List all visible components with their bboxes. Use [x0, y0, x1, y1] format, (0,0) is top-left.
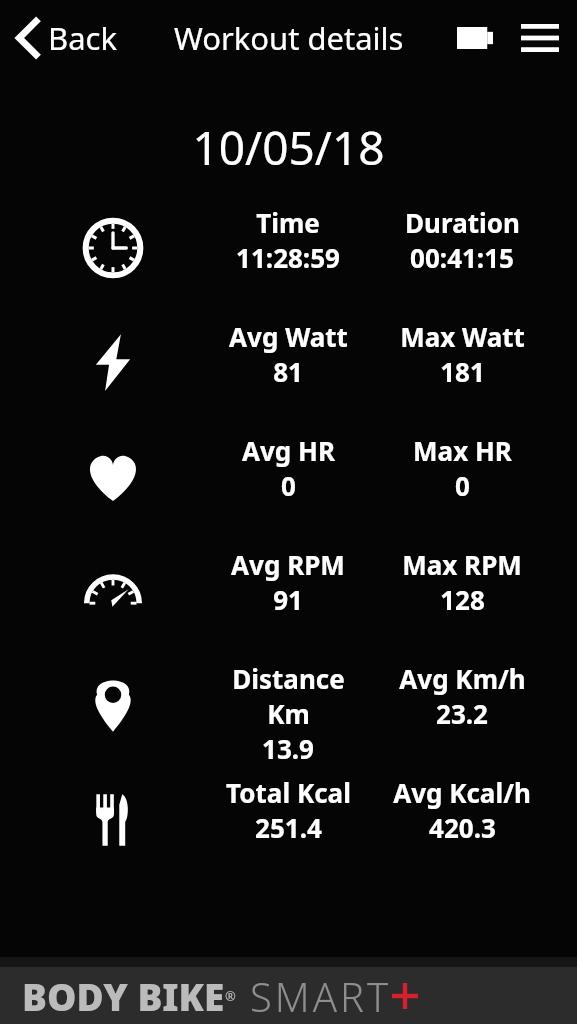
staticText: Avg Km/h — [399, 661, 526, 696]
staticText: BODY BIKE — [22, 971, 225, 1021]
button[interactable]: Battery status — [451, 21, 499, 55]
staticText: 181 — [440, 354, 485, 389]
button[interactable]: bolt — [0, 319, 577, 433]
staticText: Back — [48, 17, 117, 59]
staticText: 420.3 — [429, 810, 496, 845]
button[interactable]: heart — [0, 433, 577, 547]
other: gauge — [80, 557, 146, 623]
staticText: 81 — [273, 354, 303, 389]
staticText: Avg RPM — [231, 547, 345, 582]
staticText: Max Watt — [400, 319, 525, 354]
staticText: 91 — [273, 582, 303, 617]
staticText: Km — [267, 696, 310, 731]
button[interactable]: fork — [0, 775, 577, 889]
staticText: Max RPM — [402, 547, 522, 582]
staticText: Avg Kcal/h — [393, 775, 531, 810]
staticText: 13.9 — [262, 731, 314, 766]
button[interactable]: clock — [0, 205, 577, 319]
button[interactable]: Menu — [515, 18, 565, 58]
staticText: 0 — [455, 468, 470, 503]
staticText: 251.4 — [255, 810, 322, 845]
staticText: 23.2 — [436, 696, 488, 731]
staticText: 11:28:59 — [236, 240, 340, 275]
staticText: 00:41:15 — [410, 240, 514, 275]
staticText: Max HR — [413, 433, 512, 468]
staticText: Avg HR — [242, 433, 335, 468]
other: bolt — [80, 329, 146, 395]
staticText: Duration — [405, 205, 520, 240]
button[interactable]: pin — [0, 661, 577, 775]
other: clock — [80, 215, 146, 281]
staticText: Workout details — [174, 17, 404, 59]
button[interactable]: Back — [8, 9, 123, 67]
staticText: Total Kcal — [226, 775, 351, 810]
staticText: Avg Watt — [229, 319, 348, 354]
button[interactable]: gauge — [0, 547, 577, 661]
staticText: ® — [225, 987, 236, 1005]
staticText: 10/05/18 — [0, 116, 577, 179]
other: pin — [80, 671, 146, 737]
staticText: Distance — [232, 661, 345, 696]
staticText: Time — [256, 205, 320, 240]
staticText: 0 — [281, 468, 296, 503]
other: heart — [80, 443, 146, 509]
staticText: SMART — [250, 969, 392, 1023]
staticText: 128 — [440, 582, 485, 617]
other: fork — [80, 785, 146, 851]
